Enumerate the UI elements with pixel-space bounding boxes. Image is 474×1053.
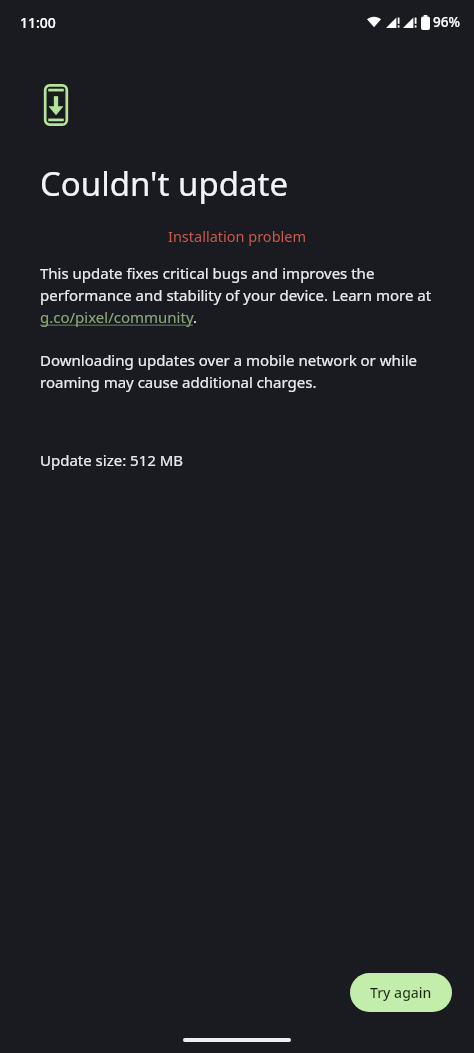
staticText: Downloading updates over a mobile networ… (40, 350, 448, 393)
staticText: 96% (433, 13, 460, 31)
staticText: Couldn't update (40, 161, 289, 206)
staticText: Update size: 512 MB (40, 450, 184, 470)
other: System update (40, 84, 72, 126)
staticText: 11:00 (20, 13, 56, 32)
staticText: Installation problem (40, 226, 434, 246)
button[interactable]: Try again (350, 973, 452, 1012)
staticText: This update fixes critical bugs and impr… (40, 263, 448, 328)
staticText: Try again (370, 983, 432, 1002)
